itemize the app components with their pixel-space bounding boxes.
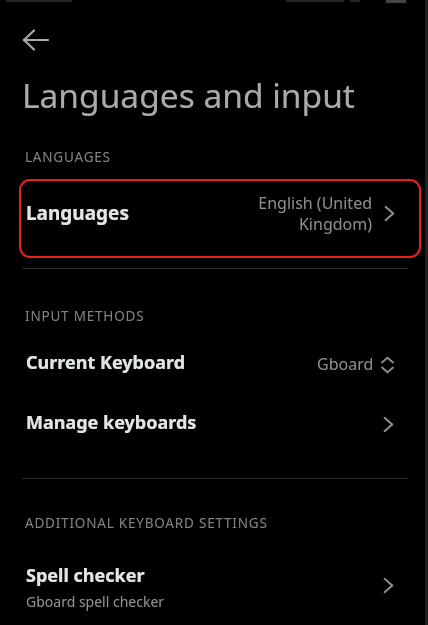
button[interactable]: Spell checker <box>0 556 428 618</box>
staticText: Languages <box>26 200 129 226</box>
button[interactable] <box>12 16 60 64</box>
staticText: LANGUAGES <box>25 148 111 166</box>
staticText: English (United Kingdom) <box>258 192 372 235</box>
staticText: Current Keyboard <box>26 350 186 375</box>
staticText: Spell checker <box>26 563 145 588</box>
button[interactable]: Languages <box>19 179 421 258</box>
staticText: Gboard spell checker <box>26 592 165 611</box>
staticText: ADDITIONAL KEYBOARD SETTINGS <box>25 514 268 532</box>
staticText: Gboard <box>317 353 374 375</box>
button[interactable]: Manage keyboards <box>0 398 428 446</box>
button[interactable]: Current Keyboard <box>0 338 428 386</box>
staticText: Manage keyboards <box>26 410 197 435</box>
staticText: INPUT METHODS <box>25 307 145 325</box>
staticText: Languages and input <box>22 72 355 118</box>
